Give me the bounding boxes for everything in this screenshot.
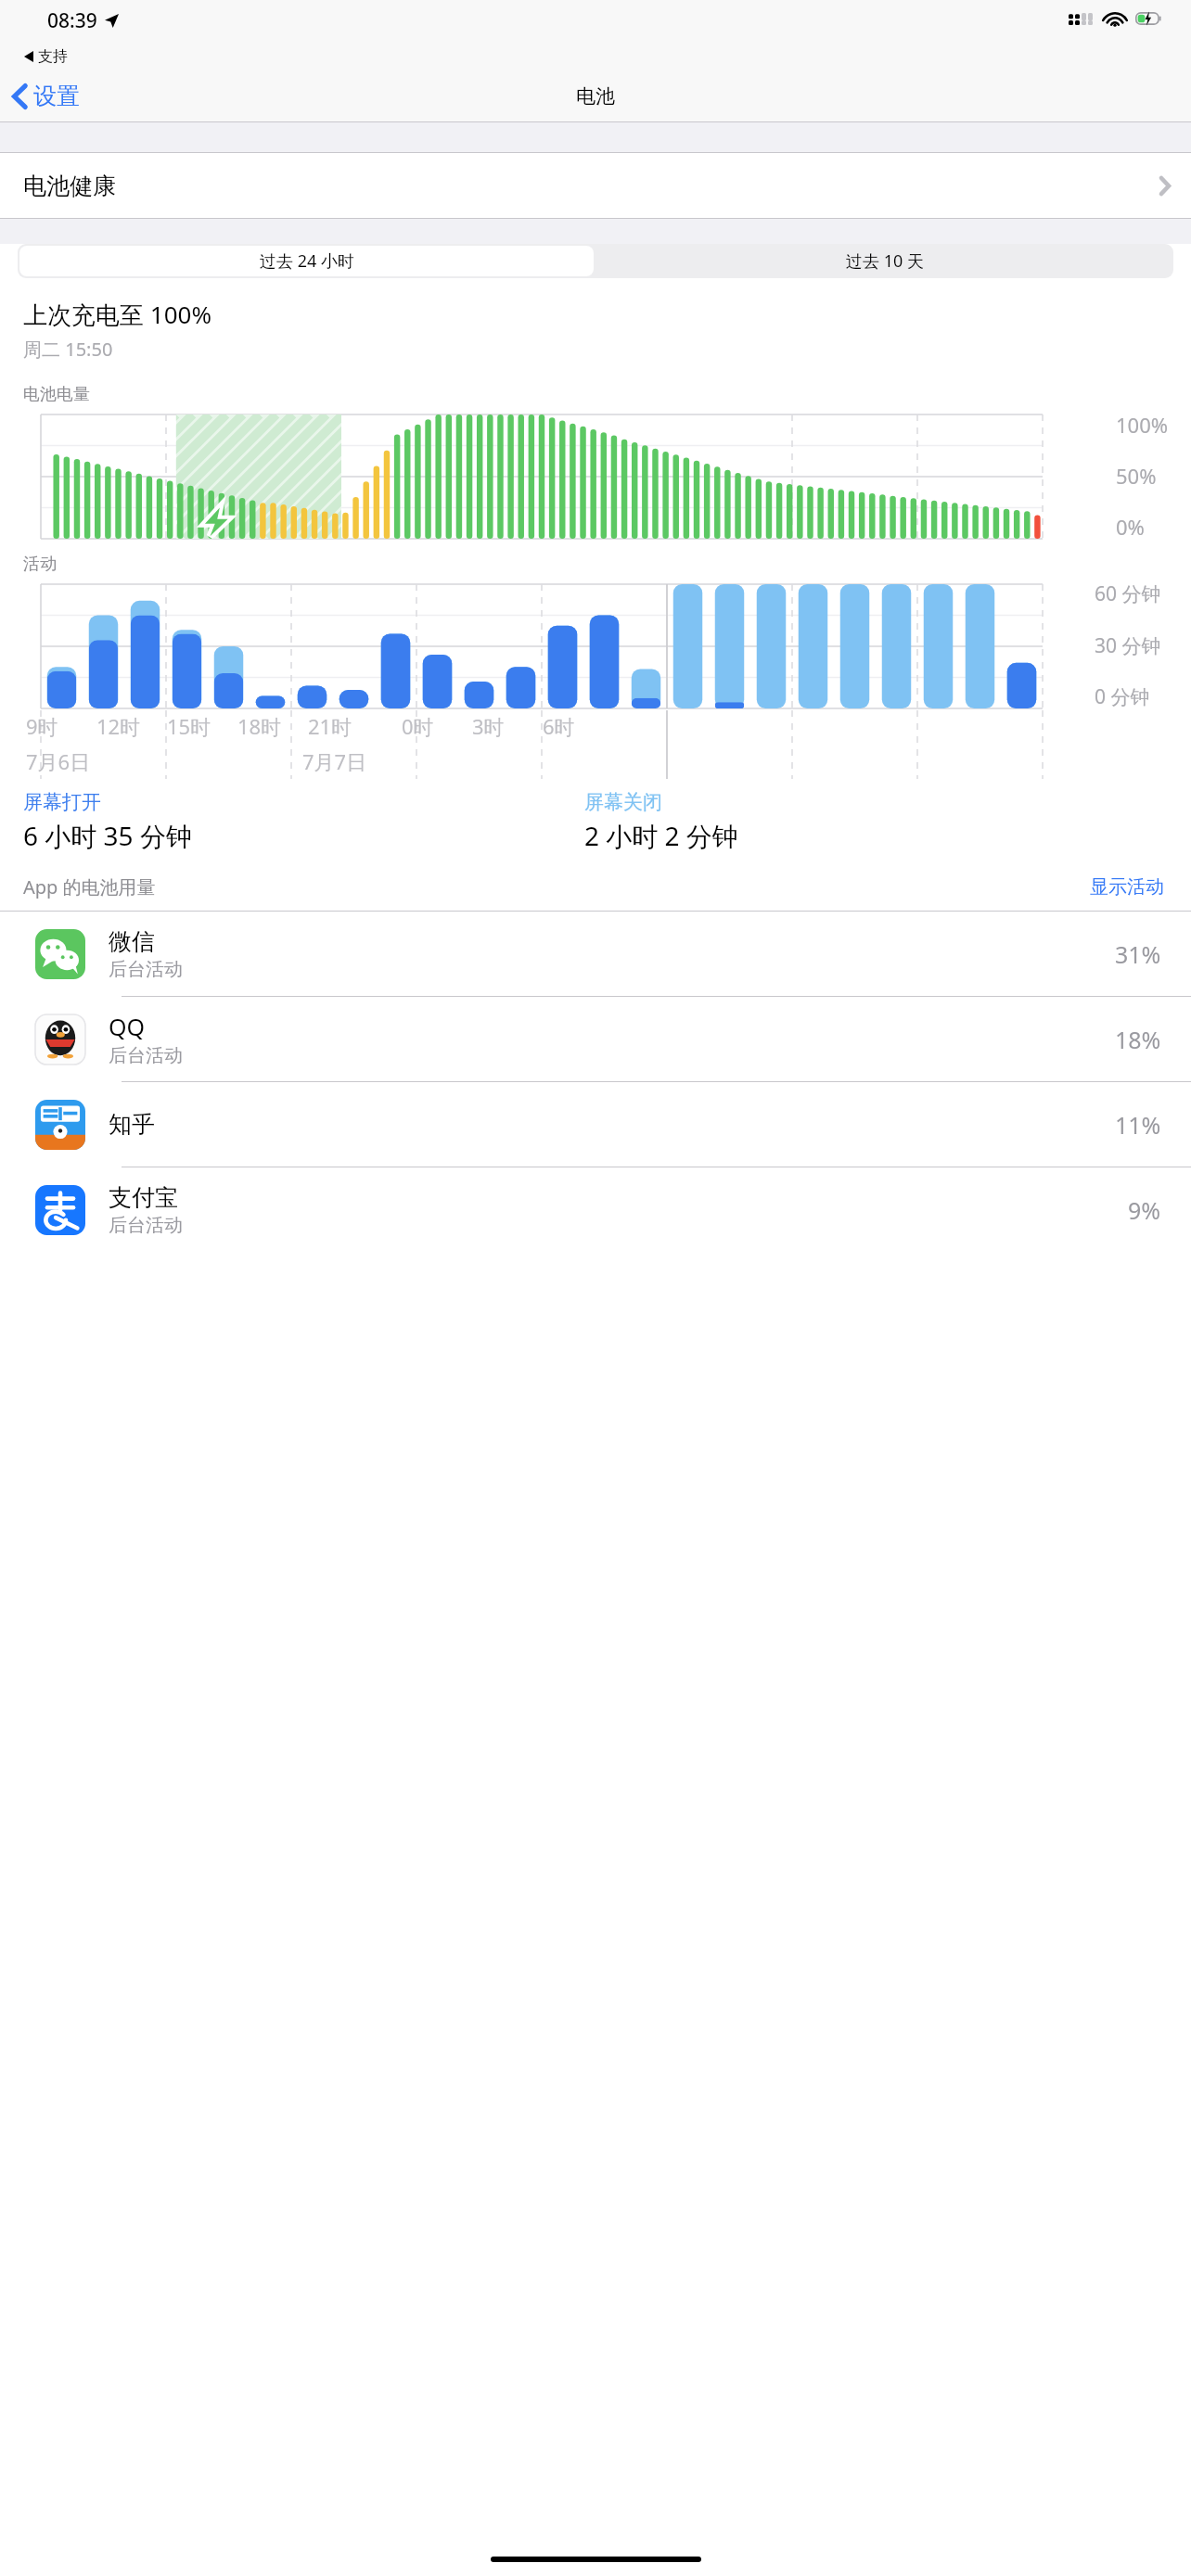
staticText: 11% <box>1115 1109 1161 1141</box>
staticText: 30 分钟 <box>1095 632 1161 659</box>
staticText: 60 分钟 <box>1095 580 1161 607</box>
staticText: 7月6日 <box>26 747 91 775</box>
button[interactable]: Alipay <box>0 1167 1191 1252</box>
staticText: 微信 <box>109 927 155 956</box>
staticText: 2 小时 2 分钟 <box>584 818 738 853</box>
staticText: 100% <box>1116 411 1169 439</box>
staticText: 18% <box>1115 1024 1161 1055</box>
staticText: QQ <box>109 1011 146 1042</box>
staticText: 21时 <box>308 712 352 740</box>
staticText: 31% <box>1115 938 1161 970</box>
staticText: 显示活动 <box>1090 875 1164 899</box>
staticText: 0% <box>1116 513 1145 541</box>
staticText: 后台活动 <box>109 1214 183 1237</box>
staticText: 电池健康 <box>23 172 116 200</box>
staticText: 0 分钟 <box>1095 683 1150 710</box>
staticText: 7月7日 <box>302 747 367 775</box>
button[interactable]: 设置 <box>7 76 85 116</box>
staticText: 50% <box>1116 462 1157 490</box>
staticText: 过去 24 小时 <box>260 249 354 273</box>
button[interactable]: Zhihu <box>0 1082 1191 1167</box>
staticText: 屏幕关闭 <box>584 790 662 814</box>
button[interactable]: WeChat <box>0 912 1191 996</box>
staticText: 08:39 <box>47 7 97 34</box>
staticText: 活动 <box>23 554 57 575</box>
staticText: 6时 <box>543 712 575 740</box>
staticText: 电池电量 <box>23 384 90 405</box>
staticText: 15时 <box>167 712 211 740</box>
staticText: 9时 <box>26 712 58 740</box>
staticText: 3时 <box>472 712 505 740</box>
staticText: 6 小时 35 分钟 <box>23 818 192 853</box>
button[interactable]: 过去 24 小时 <box>19 246 594 276</box>
other: Alipay <box>35 1185 85 1235</box>
staticText: 过去 10 天 <box>846 249 924 273</box>
other: Zhihu <box>35 1100 85 1150</box>
staticText: 18时 <box>237 712 282 740</box>
staticText: 后台活动 <box>109 958 183 981</box>
staticText: 知乎 <box>109 1110 155 1139</box>
button[interactable]: 显示活动 <box>1086 872 1168 902</box>
button[interactable]: 过去 10 天 <box>595 244 1173 278</box>
staticText: 周二 15:50 <box>23 337 113 362</box>
button[interactable]: 电池健康 <box>0 153 1191 218</box>
other: QQ <box>35 1014 85 1065</box>
other: WeChat <box>35 929 85 979</box>
staticText: App 的电池用量 <box>23 874 156 899</box>
staticText: 设置 <box>33 82 80 110</box>
staticText: 上次充电至 100% <box>23 298 211 331</box>
staticText: 屏幕打开 <box>23 790 101 814</box>
staticText: 支付宝 <box>109 1183 178 1212</box>
staticText: 电池 <box>576 84 615 108</box>
staticText: 0时 <box>402 712 434 740</box>
staticText: 12时 <box>96 712 141 740</box>
button[interactable]: QQ <box>0 997 1191 1081</box>
staticText: 后台活动 <box>109 1044 183 1067</box>
staticText: 9% <box>1128 1194 1161 1226</box>
staticText: 支持 <box>38 47 68 66</box>
